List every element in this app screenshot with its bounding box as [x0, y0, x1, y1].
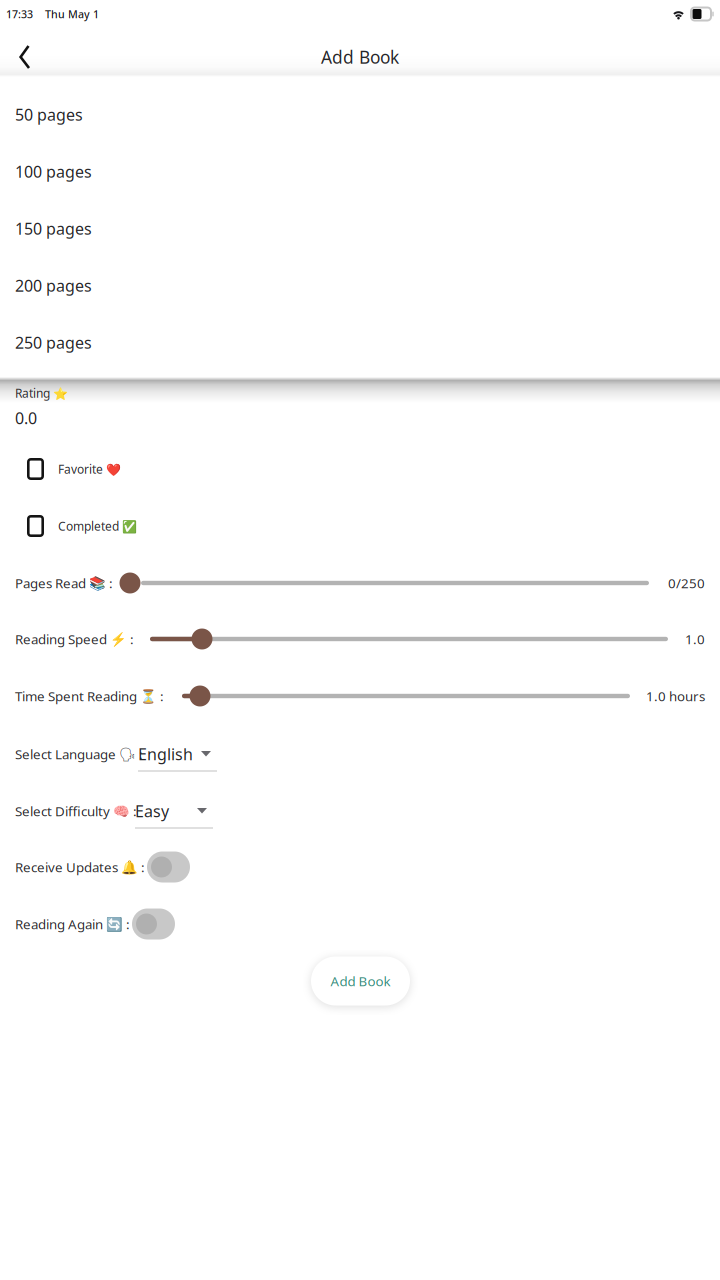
staticText: Thu May 1 [45, 7, 99, 21]
button[interactable]: Receive Updates [147, 851, 190, 882]
staticText: Rating ⭐ [15, 385, 68, 401]
staticText: 100 pages [15, 161, 92, 182]
staticText: 150 pages [15, 218, 92, 239]
button[interactable]: Completed ✅ [0, 511, 400, 541]
button[interactable]: 100 pages [0, 143, 720, 200]
staticText: Easy [135, 800, 169, 822]
button[interactable]: Reading Again [132, 908, 175, 939]
staticText: 200 pages [15, 275, 92, 296]
staticText: Completed ✅ [58, 518, 137, 534]
button[interactable]: English [138, 743, 217, 775]
staticText: Pages Read 📚 : [15, 574, 113, 592]
staticText: Receive Updates 🔔 : [15, 858, 145, 876]
staticText: Select Language 🗣 : [15, 745, 143, 763]
staticText: 50 pages [15, 104, 83, 125]
staticText: 0.0 [15, 407, 37, 429]
button[interactable]: Back [20, 32, 66, 82]
button[interactable]: 250 pages [0, 314, 720, 371]
staticText: 17:33 [6, 7, 33, 21]
button[interactable]: 50 pages [0, 86, 720, 143]
staticText: 250 pages [15, 332, 92, 353]
staticText: 1.0 hours [646, 687, 705, 705]
button[interactable]: 150 pages [0, 200, 720, 257]
staticText: Add Book [321, 45, 399, 69]
staticText: Select Difficulty 🧠 : [15, 802, 137, 820]
staticText: Reading Speed ⚡ : [15, 630, 134, 648]
button[interactable]: 200 pages [0, 257, 720, 314]
button[interactable]: Add Book [311, 956, 410, 1005]
button[interactable]: Easy [135, 800, 213, 832]
staticText: 0/250 [668, 574, 705, 592]
staticText: Reading Again 🔄 : [15, 915, 130, 933]
staticText: English [138, 743, 193, 765]
staticText: Favorite ❤️ [58, 461, 121, 477]
staticText: 1.0 [685, 630, 705, 648]
staticText: Time Spent Reading ⏳ : [15, 687, 164, 705]
staticText: Add Book [330, 972, 390, 990]
button[interactable]: Favorite ❤️ [0, 454, 400, 484]
